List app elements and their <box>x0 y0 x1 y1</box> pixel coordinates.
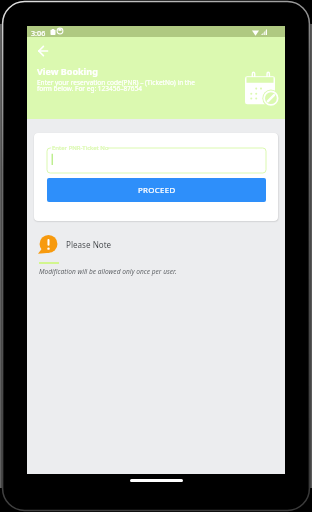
staticText: Modification will be allowed only once p… <box>39 267 177 276</box>
staticText: Enter PNR-Ticket No <box>52 144 109 152</box>
staticText: 3:06 <box>31 28 46 38</box>
staticText: Please Note <box>66 239 112 250</box>
staticText: PROCEED <box>138 185 176 196</box>
staticText: Enter your reservation code(PNR) – (Tick… <box>37 78 201 93</box>
button[interactable]: Back <box>29 39 51 61</box>
button[interactable]: Enter PNR-Ticket No <box>47 148 266 173</box>
button[interactable]: PROCEED <box>47 178 266 202</box>
staticText: View Booking <box>37 65 98 77</box>
